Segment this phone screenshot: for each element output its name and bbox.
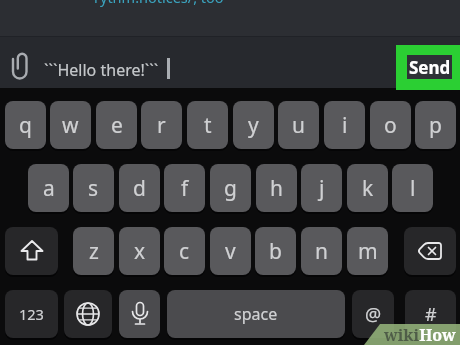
button[interactable]: h [256, 164, 297, 212]
staticText: q [19, 111, 32, 140]
button[interactable]: k [347, 164, 388, 212]
button[interactable]: c [164, 227, 205, 275]
staticText: a [43, 174, 55, 203]
button[interactable]: y [233, 101, 274, 149]
button[interactable]: Send [407, 55, 452, 79]
button[interactable]: l [392, 164, 433, 212]
button[interactable]: f [164, 164, 205, 212]
button[interactable]: u [278, 101, 319, 149]
staticText: j [319, 174, 325, 203]
staticText: w [62, 111, 79, 140]
button[interactable]: g [210, 164, 251, 212]
staticText: z [89, 237, 99, 266]
button[interactable]: space [167, 290, 345, 338]
staticText: o [384, 111, 397, 140]
staticText: h [270, 174, 283, 203]
staticText: space [234, 303, 278, 325]
button[interactable]: p [415, 101, 456, 149]
button[interactable]: w [50, 101, 91, 149]
button[interactable]: o [370, 101, 411, 149]
button[interactable]: s [73, 164, 114, 212]
button[interactable]: q [5, 101, 46, 149]
staticText: @ [365, 302, 382, 327]
staticText: u [292, 111, 305, 140]
button[interactable] [64, 290, 112, 338]
button[interactable] [5, 227, 58, 275]
button[interactable]: t [187, 101, 228, 149]
staticText: k [362, 174, 374, 203]
button[interactable]: a [28, 164, 69, 212]
staticText: # [425, 302, 437, 327]
button[interactable]: b [255, 227, 296, 275]
staticText: ```Hello there!``` [44, 59, 159, 81]
button[interactable]: n [301, 227, 342, 275]
button[interactable]: j [301, 164, 342, 212]
staticText: b [269, 237, 282, 266]
button[interactable]: v [210, 227, 251, 275]
button[interactable]: # [405, 290, 456, 338]
button[interactable] [404, 227, 456, 275]
staticText: f [181, 174, 189, 203]
button[interactable]: m [347, 227, 388, 275]
staticText: m [358, 237, 378, 266]
staticText: t [204, 111, 212, 140]
staticText: v [225, 237, 236, 266]
staticText: p [429, 111, 442, 140]
staticText: rythm.notices/, too [94, 0, 224, 7]
button[interactable]: z [73, 227, 114, 275]
button[interactable]: d [119, 164, 160, 212]
button[interactable]: 123 [5, 290, 58, 338]
button[interactable]: r [141, 101, 182, 149]
staticText: r [157, 111, 166, 140]
staticText: g [224, 174, 237, 203]
staticText: Send [409, 56, 451, 79]
staticText: wikiHow [384, 324, 456, 345]
staticText: l [410, 174, 416, 203]
staticText: x [134, 237, 146, 266]
button[interactable] [119, 290, 160, 338]
button[interactable]: @ [352, 290, 394, 338]
button[interactable] [0, 37, 460, 88]
staticText: i [342, 111, 348, 140]
staticText: c [179, 237, 190, 266]
staticText: e [111, 111, 123, 140]
button[interactable]: x [119, 227, 160, 275]
button[interactable]: i [324, 101, 365, 149]
staticText: d [133, 174, 146, 203]
staticText: 123 [19, 304, 44, 324]
staticText: n [315, 237, 328, 266]
button[interactable]: e [96, 101, 137, 149]
staticText: s [88, 174, 99, 203]
staticText: y [248, 111, 259, 140]
